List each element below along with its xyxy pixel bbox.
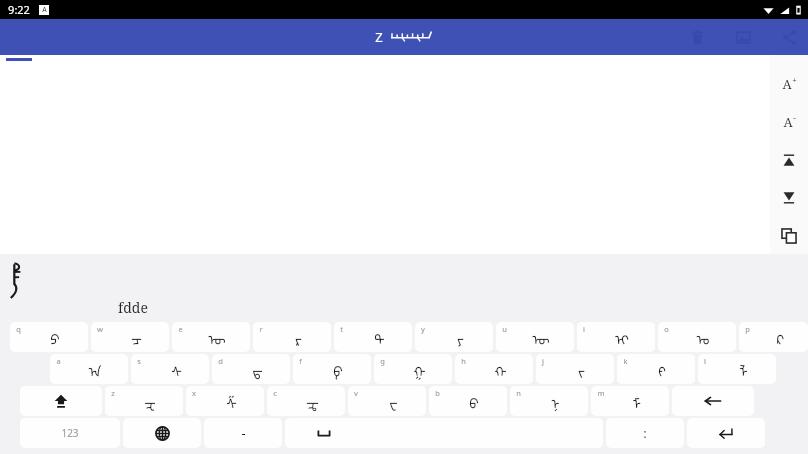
staticText: z bbox=[111, 388, 115, 398]
button[interactable]: s bbox=[131, 354, 209, 384]
staticText: p bbox=[745, 324, 750, 334]
button[interactable]: u bbox=[496, 322, 574, 352]
staticText: ᠬ bbox=[494, 357, 507, 382]
staticText: fdde bbox=[118, 298, 148, 317]
button[interactable]: d bbox=[212, 354, 290, 384]
staticText: 9:22 bbox=[8, 2, 30, 17]
staticText: ᠹ bbox=[333, 357, 343, 382]
button[interactable]: Change keyboard bbox=[123, 418, 201, 448]
button[interactable]: Jump to bottom bbox=[770, 179, 808, 217]
button[interactable]: q bbox=[10, 322, 88, 352]
staticText: j bbox=[542, 356, 544, 366]
staticText: - bbox=[793, 112, 796, 123]
staticText: d bbox=[218, 356, 223, 366]
staticText: ᠳ bbox=[252, 357, 263, 382]
staticText: A bbox=[783, 113, 793, 131]
button[interactable]: i bbox=[577, 322, 655, 352]
button[interactable]: y bbox=[415, 322, 493, 352]
button[interactable]: m bbox=[591, 386, 669, 416]
staticText: + bbox=[792, 74, 797, 85]
button[interactable]: w bbox=[91, 322, 169, 352]
button[interactable]: Jump to top bbox=[770, 141, 808, 179]
staticText: : bbox=[643, 424, 647, 442]
staticText: ᠮ bbox=[632, 389, 641, 414]
staticText: ᠭ bbox=[413, 357, 426, 382]
button[interactable]: Image bbox=[732, 26, 754, 48]
button[interactable]: x bbox=[186, 386, 264, 416]
button[interactable]: v bbox=[348, 386, 426, 416]
staticText: ᠰ bbox=[171, 357, 182, 382]
button[interactable]: j bbox=[536, 354, 614, 384]
staticText: A bbox=[42, 5, 47, 15]
button[interactable]: t bbox=[334, 322, 412, 352]
button[interactable]: Backspace bbox=[672, 386, 754, 416]
staticText: c bbox=[273, 388, 277, 398]
button[interactable]: z bbox=[105, 386, 183, 416]
button[interactable]: 123 bbox=[20, 418, 120, 448]
staticText: a bbox=[56, 356, 61, 366]
button[interactable]: Decrease text size bbox=[770, 103, 808, 141]
button[interactable]: Copy bbox=[770, 217, 808, 254]
staticText: ᠺ bbox=[776, 325, 784, 350]
staticText: r bbox=[259, 324, 263, 334]
button[interactable]: - bbox=[204, 418, 282, 448]
staticText: g bbox=[380, 356, 385, 366]
staticText: Z bbox=[375, 28, 383, 46]
staticText: ᠥ bbox=[208, 325, 226, 350]
button[interactable]: h bbox=[455, 354, 533, 384]
staticText: ᠨ bbox=[551, 389, 560, 414]
staticText: l bbox=[704, 356, 706, 366]
button[interactable]: e bbox=[172, 322, 250, 352]
button[interactable]: Delete bbox=[686, 26, 708, 48]
staticText: e bbox=[178, 324, 183, 334]
staticText: ᠶ bbox=[457, 325, 464, 350]
staticText: ᠽ bbox=[144, 389, 156, 414]
staticText: ᠪ bbox=[469, 389, 479, 414]
staticText: ᠦ bbox=[532, 325, 550, 350]
staticText: ᠢ bbox=[615, 325, 629, 350]
staticText: ᠷ bbox=[295, 325, 302, 350]
staticText: o bbox=[664, 324, 669, 334]
button[interactable]: Increase text size bbox=[770, 65, 808, 103]
staticText: n bbox=[516, 388, 521, 398]
staticText: x bbox=[192, 388, 196, 398]
button[interactable]: f bbox=[293, 354, 371, 384]
button[interactable]: k bbox=[617, 354, 695, 384]
staticText: ᠻ bbox=[658, 357, 666, 382]
staticText: A bbox=[782, 75, 792, 93]
button[interactable]: Space bbox=[285, 418, 603, 448]
button[interactable]: l bbox=[698, 354, 776, 384]
staticText: y bbox=[421, 324, 425, 334]
staticText: ᠼ bbox=[306, 389, 319, 414]
staticText: ᠴ bbox=[131, 325, 142, 350]
button[interactable]: b bbox=[429, 386, 507, 416]
staticText: u bbox=[502, 324, 507, 334]
staticText: w bbox=[97, 324, 103, 334]
button[interactable]: p bbox=[739, 322, 808, 352]
button[interactable]: r bbox=[253, 322, 331, 352]
staticText: ᠵ bbox=[578, 357, 585, 382]
button[interactable]: : bbox=[606, 418, 684, 448]
staticText: k bbox=[623, 356, 628, 366]
staticText: ᠠ bbox=[88, 357, 102, 382]
staticText: m bbox=[597, 388, 605, 398]
staticText: t bbox=[340, 324, 343, 334]
button[interactable]: a bbox=[50, 354, 128, 384]
staticText: h bbox=[461, 356, 466, 366]
staticText: i bbox=[583, 324, 585, 334]
staticText: ᠫ bbox=[50, 325, 60, 350]
staticText: ᠱ bbox=[226, 389, 237, 414]
staticText: q bbox=[16, 324, 21, 334]
staticText: ᠯ bbox=[739, 357, 748, 382]
staticText: ᠸ bbox=[389, 389, 398, 414]
staticText: 123 bbox=[61, 426, 79, 440]
button[interactable]: c bbox=[267, 386, 345, 416]
staticText: b bbox=[435, 388, 440, 398]
button[interactable]: Shift bbox=[20, 386, 102, 416]
button[interactable]: o bbox=[658, 322, 736, 352]
button[interactable]: n bbox=[510, 386, 588, 416]
button[interactable]: g bbox=[374, 354, 452, 384]
staticText: f bbox=[299, 356, 302, 366]
button[interactable]: Enter bbox=[687, 418, 765, 448]
